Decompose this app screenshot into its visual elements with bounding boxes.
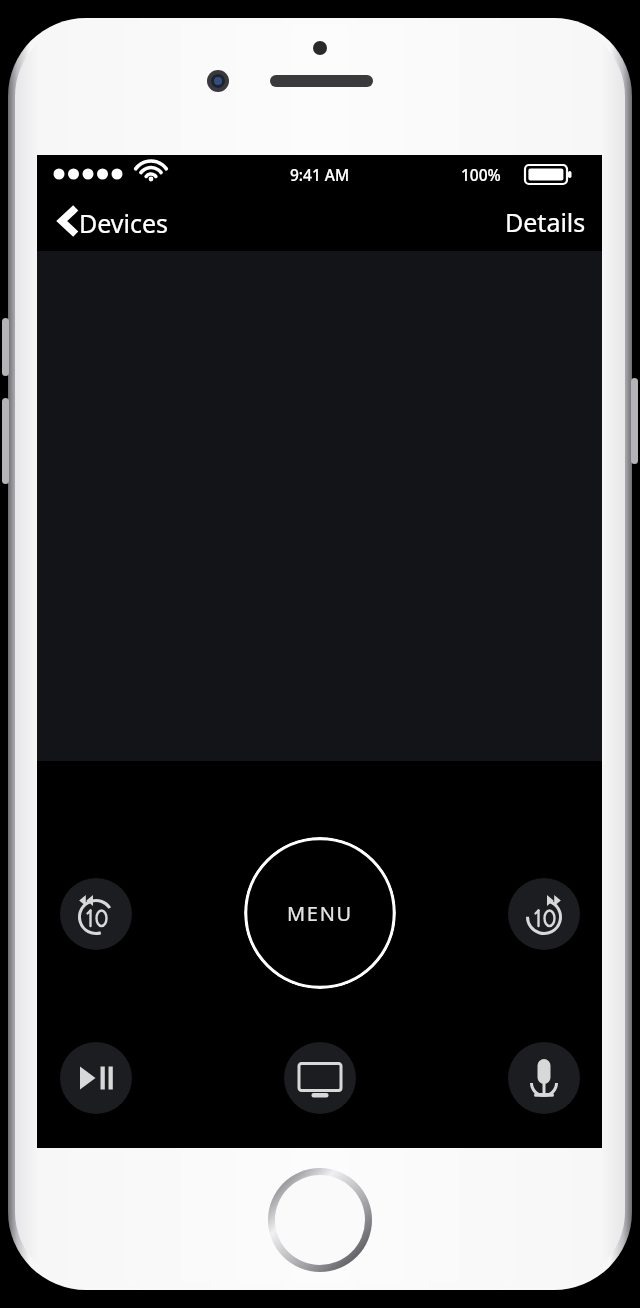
staticText: Devices	[79, 206, 169, 240]
button[interactable]: Play or pause	[60, 1042, 132, 1114]
button[interactable]: TV	[284, 1042, 356, 1114]
button[interactable]: Skip back 10 seconds	[60, 878, 132, 950]
button[interactable]: Devices	[49, 197, 151, 247]
staticText: MENU	[287, 900, 353, 927]
button[interactable]: Skip forward 10 seconds	[508, 878, 580, 950]
staticText: 9:41 AM	[290, 164, 350, 185]
button[interactable]: Details	[499, 197, 592, 247]
staticText: 100%	[461, 164, 501, 185]
staticText: Details	[505, 205, 586, 239]
button[interactable]: MENU	[244, 837, 396, 989]
button[interactable]: Siri voice input	[508, 1042, 580, 1114]
